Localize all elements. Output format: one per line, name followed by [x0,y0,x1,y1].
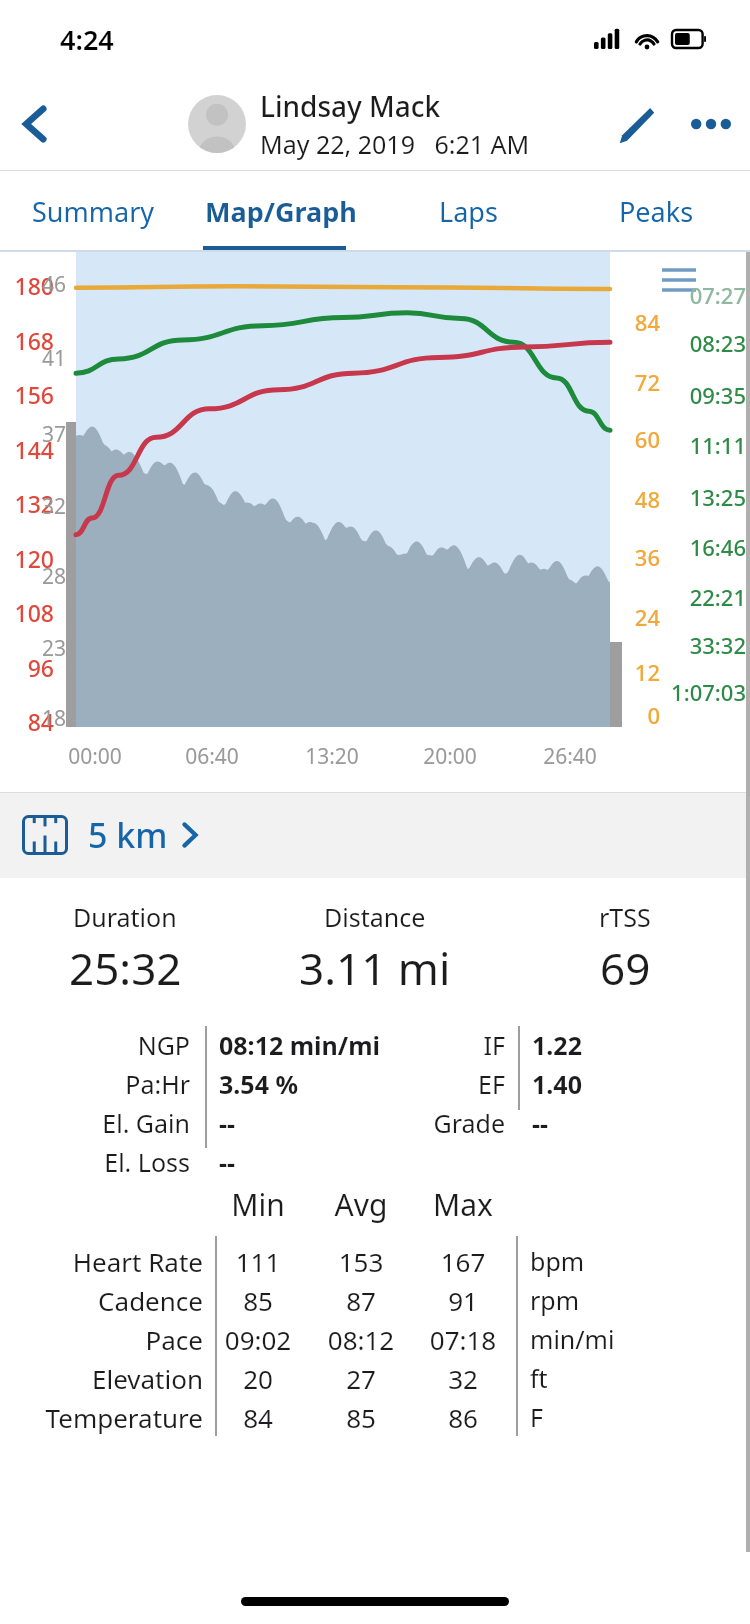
button[interactable]: Back [0,78,70,170]
staticText: 3.54 % [219,1067,298,1101]
staticText: F [530,1400,543,1434]
staticText: 27 [301,1361,421,1396]
staticText: 41 [36,344,66,373]
staticText: 46 [36,270,66,299]
staticText: -- [219,1145,236,1179]
button[interactable]: Peaks [562,170,750,252]
staticText: May 22, 2019 6:21 AM [260,127,530,161]
staticText: Grade [350,1106,505,1140]
staticText: 07:18 [403,1322,523,1357]
staticText: 28 [36,562,66,591]
staticText: Pace [10,1322,203,1357]
staticText: Max [403,1184,523,1225]
staticText: -- [219,1106,236,1140]
staticText: min/mi [530,1322,615,1356]
staticText: 91 [403,1283,523,1318]
staticText: 120 [8,543,54,574]
staticText: 84 [198,1400,318,1435]
staticText: Pa:Hr [40,1067,190,1101]
staticText: 12 [626,657,660,687]
staticText: rpm [530,1283,580,1317]
staticText: IF [350,1028,505,1062]
staticText: 168 [8,325,54,356]
staticText: 20:00 [405,742,495,771]
staticText: Lindsay Mack [260,87,441,125]
staticText: 20 [198,1361,318,1396]
staticText: 84 [626,307,660,337]
staticText: 08:12 min/mi [219,1028,381,1062]
staticText: rTSS [599,900,651,934]
staticText: 06:40 [167,742,257,771]
staticText: 13:20 [287,742,377,771]
staticText: 16:46 [650,532,746,562]
staticText: 167 [403,1244,523,1279]
staticText: 0 [626,700,660,730]
staticText: 23 [36,634,66,663]
staticText: 132 [8,488,54,519]
staticText: 09:35 [650,380,746,410]
staticText: 36 [626,542,660,572]
staticText: Distance [324,900,426,934]
button[interactable]: Edit [598,87,672,161]
staticText: Heart Rate [10,1244,203,1279]
staticText: 87 [301,1283,421,1318]
staticText: 08:12 [301,1322,421,1357]
staticText: 11:11 [650,430,746,460]
staticText: 85 [301,1400,421,1435]
staticText: 00:00 [50,742,140,771]
staticText: 108 [8,597,54,628]
button[interactable]: Map/Graph [187,170,374,252]
staticText: 1.22 [532,1028,582,1062]
staticText: Laps [439,193,498,230]
button[interactable]: Summary [0,170,187,252]
staticText: 156 [8,379,54,410]
staticText: 60 [626,424,660,454]
staticText: 32 [403,1361,523,1396]
staticText: 07:27 [650,280,746,310]
staticText: 96 [8,652,54,683]
staticText: 18 [36,704,66,733]
staticText: 4:24 [60,21,114,58]
staticText: 111 [198,1244,318,1279]
staticText: Avg [301,1184,421,1225]
staticText: EF [350,1067,505,1101]
staticText: bpm [530,1244,585,1278]
button[interactable]: Laps [374,170,562,252]
staticText: ft [530,1361,548,1395]
staticText: 09:02 [198,1322,318,1357]
staticText: 180 [8,270,54,301]
button[interactable]: More options [672,85,750,163]
staticText: Elevation [10,1361,203,1396]
staticText: 1:07:03 [650,677,746,707]
staticText: 3.11 mi [299,938,451,998]
staticText: Peaks [619,193,694,230]
staticText: 32 [36,492,66,521]
staticText: 1.40 [532,1067,582,1101]
staticText: NGP [40,1028,190,1062]
staticText: 08:23 [650,328,746,358]
staticText: 72 [626,367,660,397]
staticText: 5 km [88,812,168,858]
staticText: 86 [403,1400,523,1435]
staticText: 33:32 [650,630,746,660]
staticText: -- [532,1106,549,1140]
staticText: Min [198,1184,318,1225]
staticText: Temperature [10,1400,203,1435]
staticText: 25:32 [69,938,182,998]
staticText: Cadence [10,1283,203,1318]
staticText: 22:21 [650,582,746,612]
staticText: Duration [73,900,177,934]
staticText: 48 [626,484,660,514]
staticText: 85 [198,1283,318,1318]
button[interactable]: 5 km [0,792,750,878]
staticText: Summary [32,193,155,230]
staticText: 37 [36,420,66,449]
staticText: 26:40 [525,742,615,771]
staticText: 24 [626,602,660,632]
staticText: 84 [8,706,54,737]
staticText: 144 [8,434,54,465]
staticText: Map/Graph [205,193,357,230]
staticText: 69 [600,938,651,998]
staticText: 13:25 [650,482,746,512]
staticText: 153 [301,1244,421,1279]
